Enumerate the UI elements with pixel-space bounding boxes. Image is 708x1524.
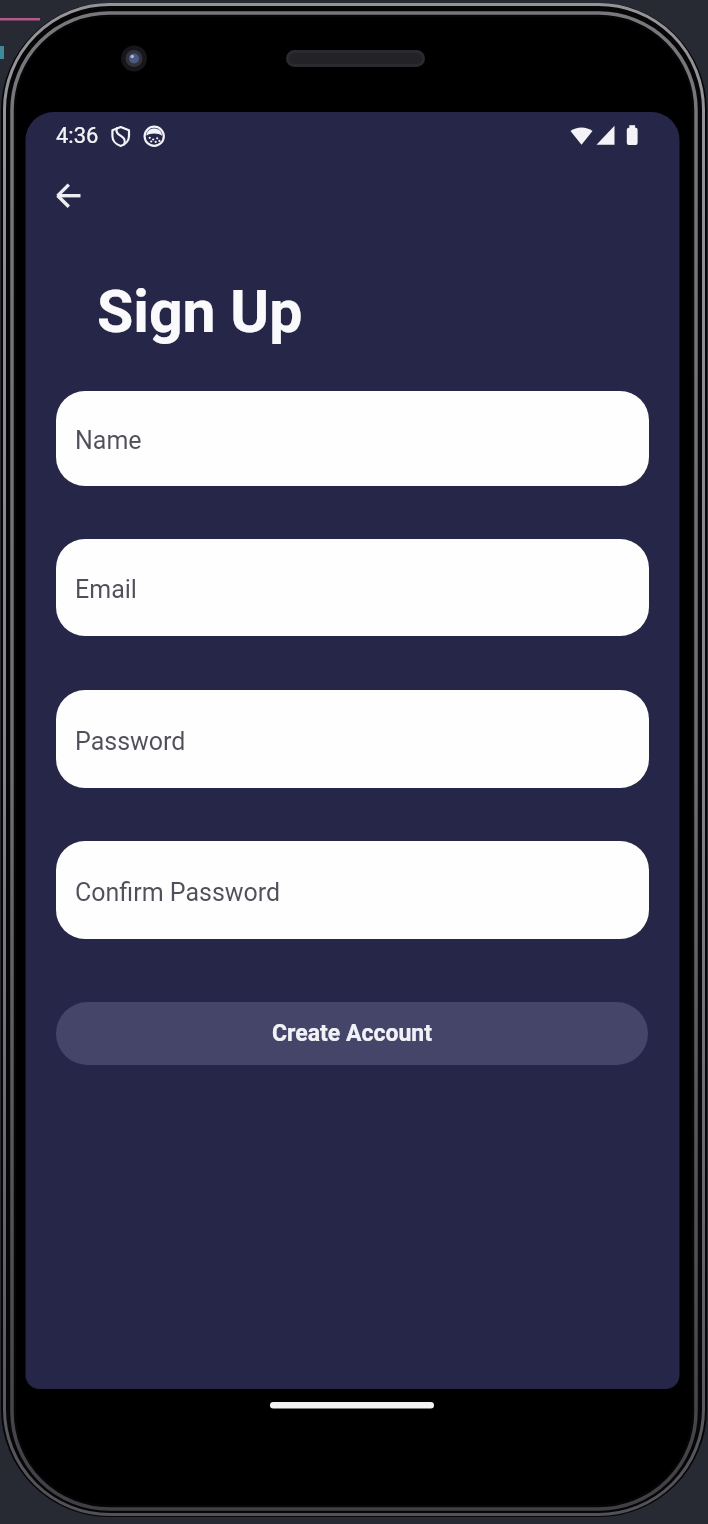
button[interactable]: Email [56, 539, 649, 636]
staticText: Sign Up [97, 277, 303, 346]
staticText: Create Account [272, 1020, 432, 1047]
button[interactable]: Password [56, 690, 649, 788]
staticText: Name [75, 426, 142, 455]
staticText: Password [75, 727, 186, 756]
button[interactable]: Create Account [56, 1002, 648, 1065]
staticText: 4:36 [56, 123, 99, 149]
button[interactable]: Name [56, 391, 649, 486]
staticText: Confirm Password [75, 878, 281, 907]
button[interactable]: Confirm Password [56, 841, 649, 939]
staticText: Email [75, 575, 137, 604]
button[interactable] [46, 174, 90, 218]
